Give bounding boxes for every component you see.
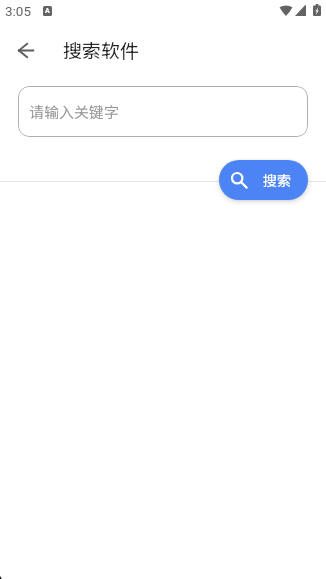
staticText: 搜索软件 bbox=[63, 36, 140, 64]
staticText: 请输入关键字 bbox=[29, 101, 120, 123]
button[interactable]: 搜索 bbox=[219, 160, 308, 200]
button[interactable]: Back bbox=[8, 32, 44, 68]
staticText: 搜索 bbox=[263, 170, 291, 190]
button[interactable]: 请输入关键字 bbox=[18, 86, 308, 137]
staticText: 3:05 bbox=[5, 3, 32, 19]
staticText: A bbox=[45, 7, 50, 15]
